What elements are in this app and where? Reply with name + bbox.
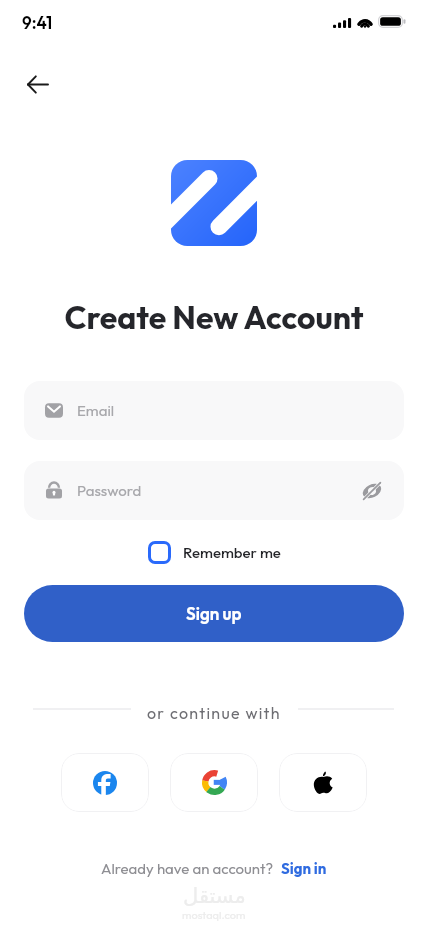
button[interactable]: Sign up with Google [170,753,258,812]
button[interactable]: Back [15,62,59,106]
button[interactable]: Sign up [24,585,404,642]
staticText: Remember me [183,543,281,562]
button[interactable]: Sign up with Facebook [61,753,149,812]
button[interactable]: Remember me [144,536,285,569]
staticText: مستقل [183,884,246,908]
staticText: Already have an account? [101,859,274,878]
staticText: Email [77,401,115,420]
staticText: 9:41 [22,12,53,33]
staticText: Sign in [281,859,327,878]
staticText: Sign up [186,603,242,624]
button[interactable]: Sign up with Apple [279,753,367,812]
staticText: Password [77,481,142,500]
button[interactable]: Show password [358,477,386,505]
staticText: or continue with [147,703,281,723]
staticText: Create New Account [0,297,428,337]
staticText: mostaql.com [182,908,246,922]
button[interactable]: Sign in [281,859,327,878]
button[interactable]: Email [24,381,404,440]
button[interactable]: Password [24,461,404,520]
